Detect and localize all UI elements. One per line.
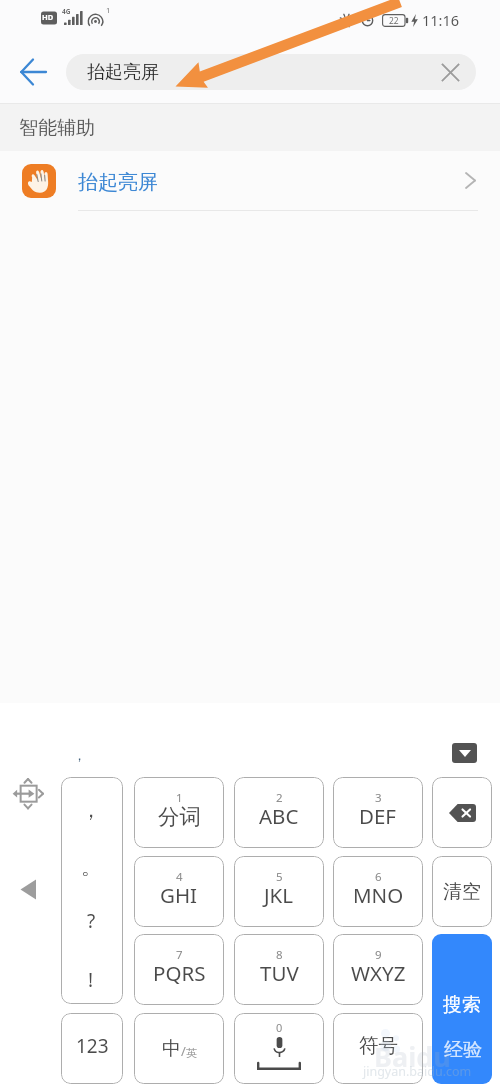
staticText: 22: [389, 15, 399, 27]
button[interactable]: 中英切换: [134, 1013, 224, 1084]
button[interactable]: Punctuation: [61, 777, 123, 1004]
button[interactable]: Move keyboard: [11, 777, 45, 811]
staticText: 抬起亮屏: [87, 61, 159, 84]
staticText: 0: [276, 1020, 283, 1035]
button[interactable]: MNO: [333, 856, 423, 927]
staticText: ABC: [259, 802, 299, 830]
staticText: 中: [162, 1037, 181, 1061]
button[interactable]: 抬起亮屏: [0, 151, 500, 210]
staticText: 11:16: [422, 10, 460, 30]
staticText: 4G: [62, 7, 71, 16]
button[interactable]: GHI: [134, 856, 224, 927]
button[interactable]: 抬起亮屏: [66, 54, 476, 90]
staticText: 1: [176, 790, 183, 806]
staticText: !: [88, 967, 94, 993]
staticText: 1: [106, 5, 111, 15]
staticText: 9: [375, 947, 382, 963]
staticText: 2: [276, 790, 283, 806]
staticText: jingyan.baidu.com: [363, 1063, 472, 1080]
button[interactable]: 搜索: [432, 934, 492, 1084]
staticText: 英: [186, 1046, 197, 1060]
staticText: 清空: [443, 880, 481, 904]
button[interactable]: 符号: [333, 1013, 423, 1084]
staticText: Baidu: [374, 1038, 451, 1075]
staticText: TUV: [260, 959, 299, 987]
button[interactable]: WXYZ: [333, 934, 423, 1005]
button[interactable]: ABC: [234, 777, 324, 848]
button[interactable]: Clear: [436, 58, 464, 86]
button[interactable]: TUV: [234, 934, 324, 1005]
staticText: 8: [276, 947, 283, 963]
button[interactable]: 分词: [134, 777, 224, 848]
staticText: 4: [176, 869, 183, 885]
button[interactable]: DEF: [333, 777, 423, 848]
staticText: HD: [42, 12, 54, 22]
button[interactable]: Hide keyboard: [452, 743, 477, 763]
staticText: /: [181, 1042, 186, 1060]
staticText: 经验: [444, 1038, 482, 1062]
staticText: 分词: [158, 803, 201, 830]
button[interactable]: PQRS: [134, 934, 224, 1005]
button[interactable]: JKL: [234, 856, 324, 927]
staticText: WXYZ: [351, 959, 406, 987]
staticText: 搜索: [443, 993, 481, 1017]
button[interactable]: Previous page: [11, 873, 44, 906]
staticText: 5: [276, 869, 283, 885]
staticText: JKL: [264, 881, 294, 909]
staticText: 123: [76, 1033, 109, 1059]
staticText: 抬起亮屏: [78, 170, 158, 195]
staticText: 智能辅助: [19, 116, 95, 140]
staticText: GHI: [160, 881, 198, 909]
staticText: 符号: [359, 1033, 398, 1058]
button[interactable]: 清空: [432, 856, 492, 927]
staticText: 6: [375, 869, 382, 885]
staticText: 7: [176, 947, 183, 963]
staticText: 。: [81, 855, 101, 880]
staticText: DEF: [359, 802, 397, 830]
button[interactable]: Space: [234, 1013, 324, 1084]
button[interactable]: Back: [11, 50, 55, 94]
staticText: ?: [87, 908, 96, 934]
staticText: 3: [375, 790, 382, 806]
staticText: MNO: [353, 881, 404, 909]
button[interactable]: Backspace: [432, 777, 492, 848]
staticText: ，: [73, 747, 86, 763]
button[interactable]: 123: [61, 1013, 123, 1084]
staticText: ，: [81, 798, 101, 823]
staticText: PQRS: [153, 959, 206, 987]
